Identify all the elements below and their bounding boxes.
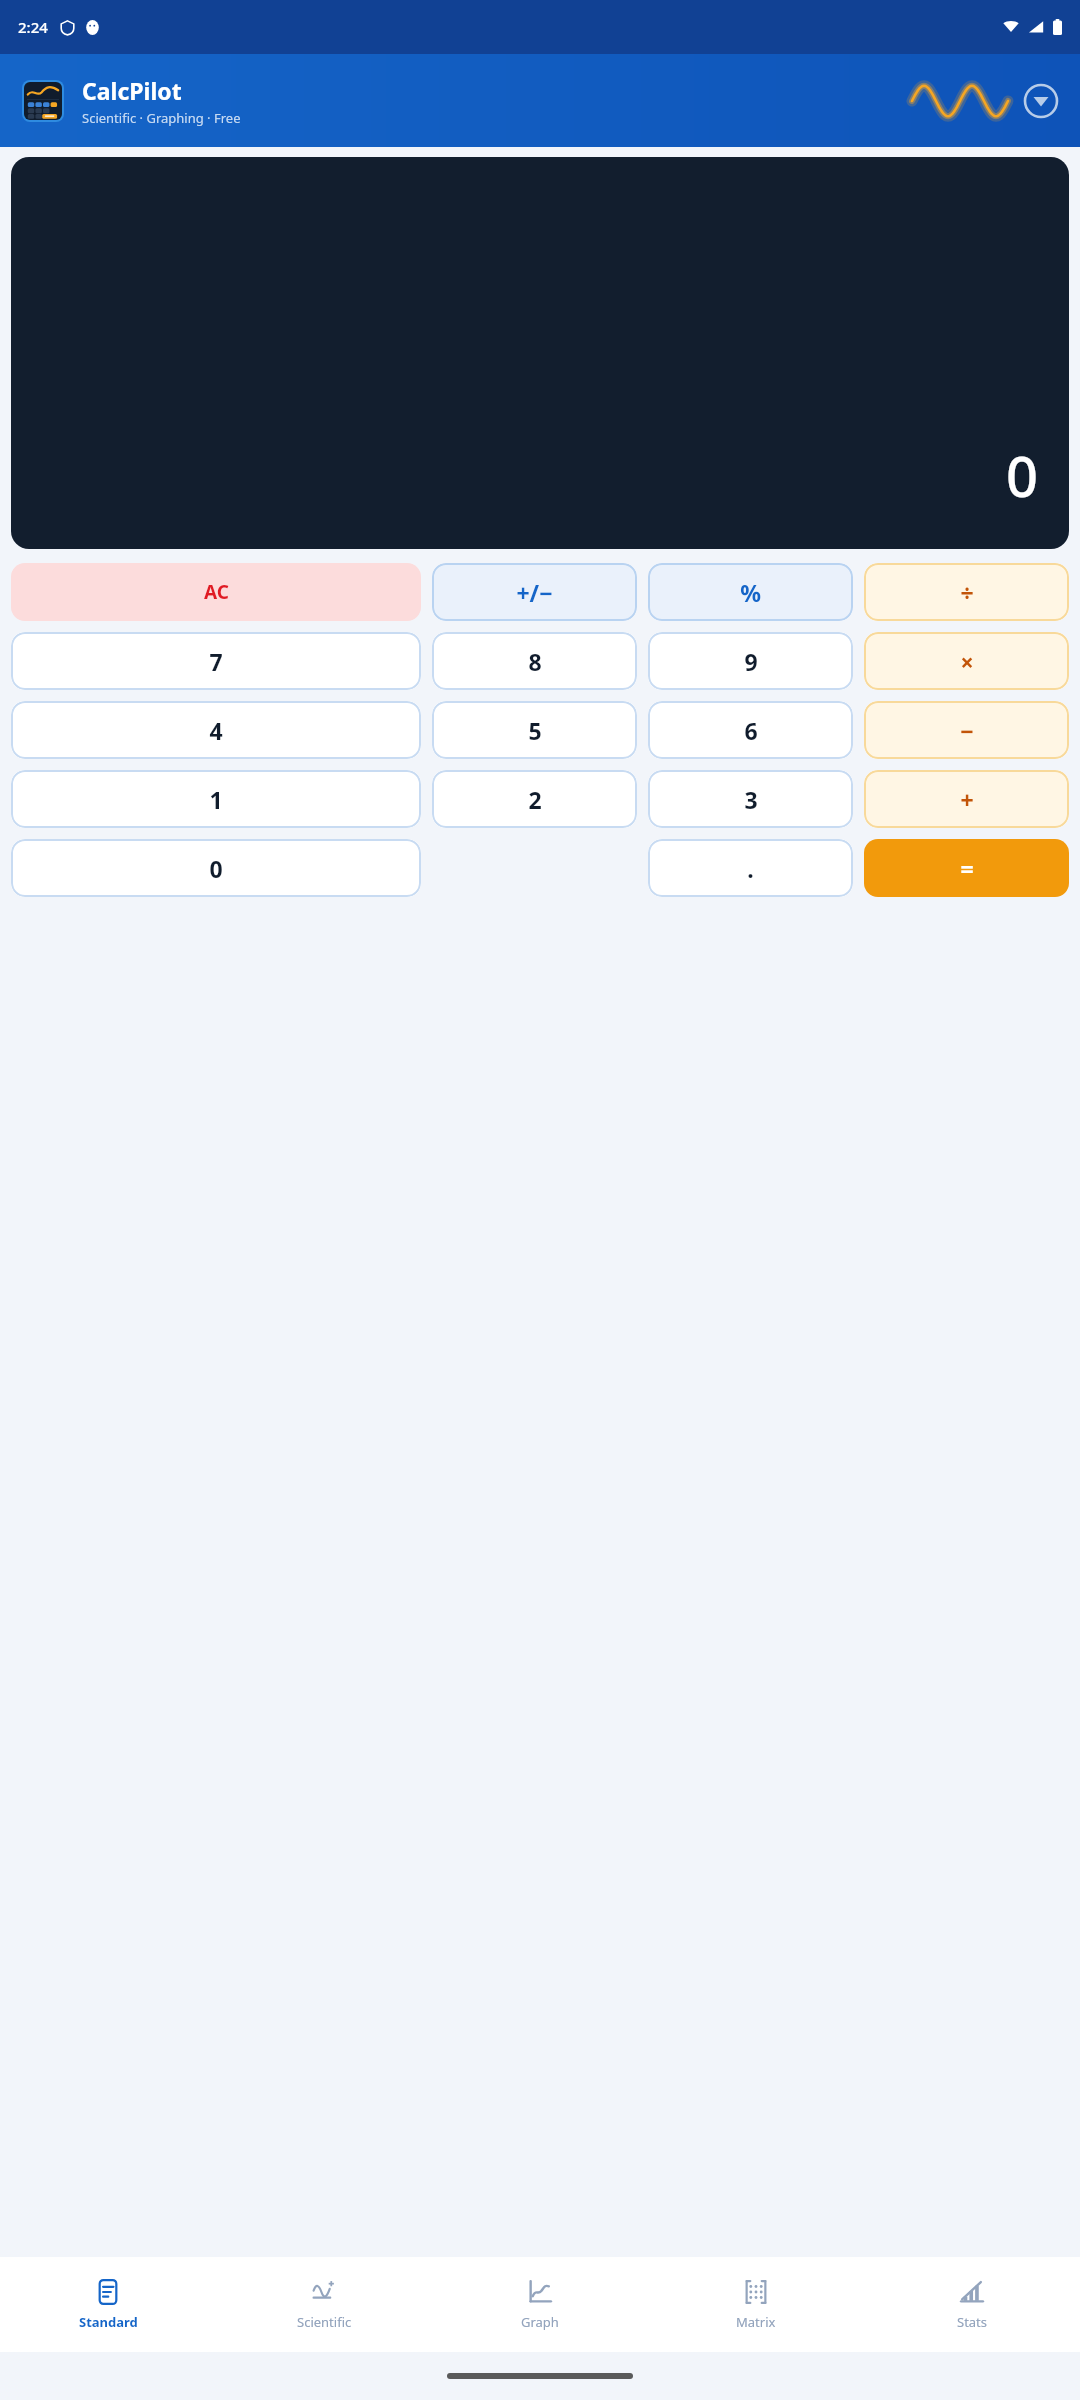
staticText: + [960,784,974,815]
button[interactable]: % [648,563,853,621]
button[interactable]: ÷ [864,563,1069,621]
staticText: 5 [528,715,542,746]
button[interactable]: + [864,770,1069,828]
button[interactable]: 6 [648,701,853,759]
button[interactable]: Expand menu [1024,84,1058,118]
staticText: 6 [744,715,758,746]
button[interactable]: 4 [11,701,421,759]
staticText: 3 [744,784,758,815]
button[interactable]: 0 [11,839,421,897]
button[interactable]: Matrix [648,2257,864,2352]
button[interactable]: 3 [648,770,853,828]
staticText: . [747,853,754,884]
button[interactable]: 5 [432,701,637,759]
button[interactable]: . [648,839,853,897]
staticText: Graph [521,2313,559,2331]
button[interactable]: Waveform [912,81,1008,121]
button[interactable]: +/− [432,563,637,621]
staticText: 7 [209,646,223,677]
staticText: +/− [516,577,553,608]
staticText: 2:24 [18,17,48,37]
staticText: 2 [528,784,542,815]
button[interactable]: × [864,632,1069,690]
staticText: − [960,715,974,746]
staticText: % [740,577,761,608]
button[interactable]: 1 [11,770,421,828]
button[interactable]: = [864,839,1069,897]
staticText: 8 [528,646,542,677]
staticText: AC [204,579,229,605]
button[interactable]: AC [11,563,421,621]
staticText: CalcPilot [82,75,182,106]
button[interactable]: Graph [432,2257,648,2352]
button[interactable]: 8 [432,632,637,690]
button[interactable]: 2 [432,770,637,828]
staticText: 1 [209,784,223,815]
button[interactable]: 9 [648,632,853,690]
staticText: Stats [957,2313,988,2331]
staticText: 0 [209,853,223,884]
staticText: 4 [209,715,223,746]
button[interactable]: 7 [11,632,421,690]
staticText: 9 [744,646,758,677]
button[interactable]: Stats [864,2257,1080,2352]
staticText: 0 [1006,437,1039,513]
button[interactable]: − [864,701,1069,759]
button[interactable]: Scientific [216,2257,432,2352]
button[interactable]: Standard [0,2257,216,2352]
staticText: × [960,646,974,677]
staticText: Scientific [297,2313,352,2331]
staticText: ÷ [960,577,974,608]
staticText: Matrix [736,2313,776,2331]
staticText: = [960,853,974,884]
staticText: Standard [79,2313,138,2331]
staticText: Scientific · Graphing · Free [82,109,241,127]
